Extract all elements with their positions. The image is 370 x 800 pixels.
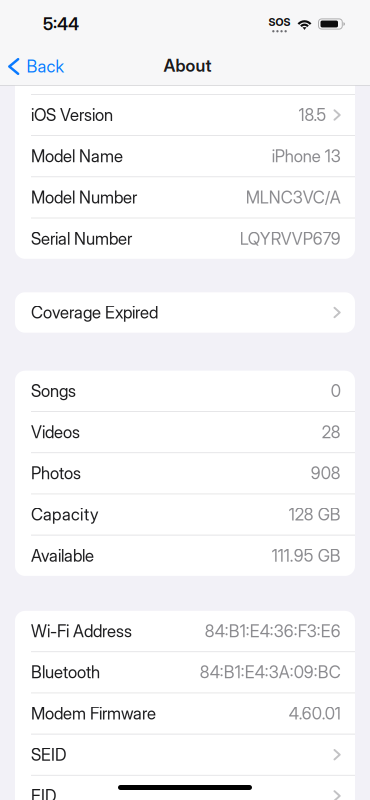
button[interactable]: Back: [0, 48, 74, 85]
button[interactable]: Coverage Expired: [15, 292, 355, 333]
staticText: Bluetooth: [31, 662, 100, 682]
staticText: 4.60.01: [289, 703, 341, 724]
staticText: 128 GB: [289, 504, 341, 525]
staticText: EID: [31, 786, 56, 800]
button[interactable]: Model Name: [15, 136, 355, 176]
button[interactable]: Videos: [15, 412, 355, 452]
button[interactable]: Capacity: [15, 494, 355, 535]
staticText: 5:44: [43, 13, 79, 34]
button[interactable]: Wi-Fi Address: [15, 611, 355, 651]
staticText: Modem Firmware: [31, 703, 156, 724]
staticText: MLNC3VC/A: [246, 187, 341, 207]
staticText: iPhone 13: [272, 146, 341, 166]
staticText: 84:B1:E4:36:F3:E6: [205, 621, 341, 641]
staticText: LQYRVVP679: [240, 228, 341, 249]
button[interactable]: Songs: [15, 371, 355, 411]
button[interactable]: Model Number: [15, 177, 355, 218]
staticText: Back: [26, 56, 64, 77]
staticText: Available: [31, 546, 94, 566]
staticText: About: [163, 55, 211, 76]
staticText: 908: [311, 463, 341, 483]
staticText: 18.5: [298, 105, 326, 125]
button[interactable]: EID: [15, 776, 355, 800]
button[interactable]: Available: [15, 535, 355, 576]
staticText: SOS: [268, 16, 290, 28]
button[interactable]: Photos: [15, 453, 355, 493]
staticText: Model Name: [31, 146, 123, 166]
staticText: Photos: [31, 463, 81, 483]
staticText: 84:B1:E4:3A:09:BC: [200, 662, 341, 682]
staticText: Videos: [31, 422, 80, 442]
staticText: 111.95 GB: [272, 546, 341, 566]
staticText: Wi-Fi Address: [31, 621, 132, 641]
button[interactable]: Modem Firmware: [15, 693, 355, 734]
button[interactable]: iOS Version: [15, 95, 355, 135]
button[interactable]: Bluetooth: [15, 652, 355, 692]
button[interactable]: SEID: [15, 734, 355, 775]
staticText: Model Number: [31, 187, 137, 207]
staticText: SEID: [31, 745, 66, 765]
staticText: iOS Version: [31, 105, 113, 125]
staticText: Coverage Expired: [31, 302, 158, 323]
staticText: Songs: [31, 381, 76, 401]
staticText: 28: [322, 422, 341, 442]
staticText: Serial Number: [31, 228, 132, 249]
button[interactable]: Serial Number: [15, 218, 355, 259]
staticText: Capacity: [31, 504, 99, 525]
staticText: 0: [331, 381, 341, 401]
